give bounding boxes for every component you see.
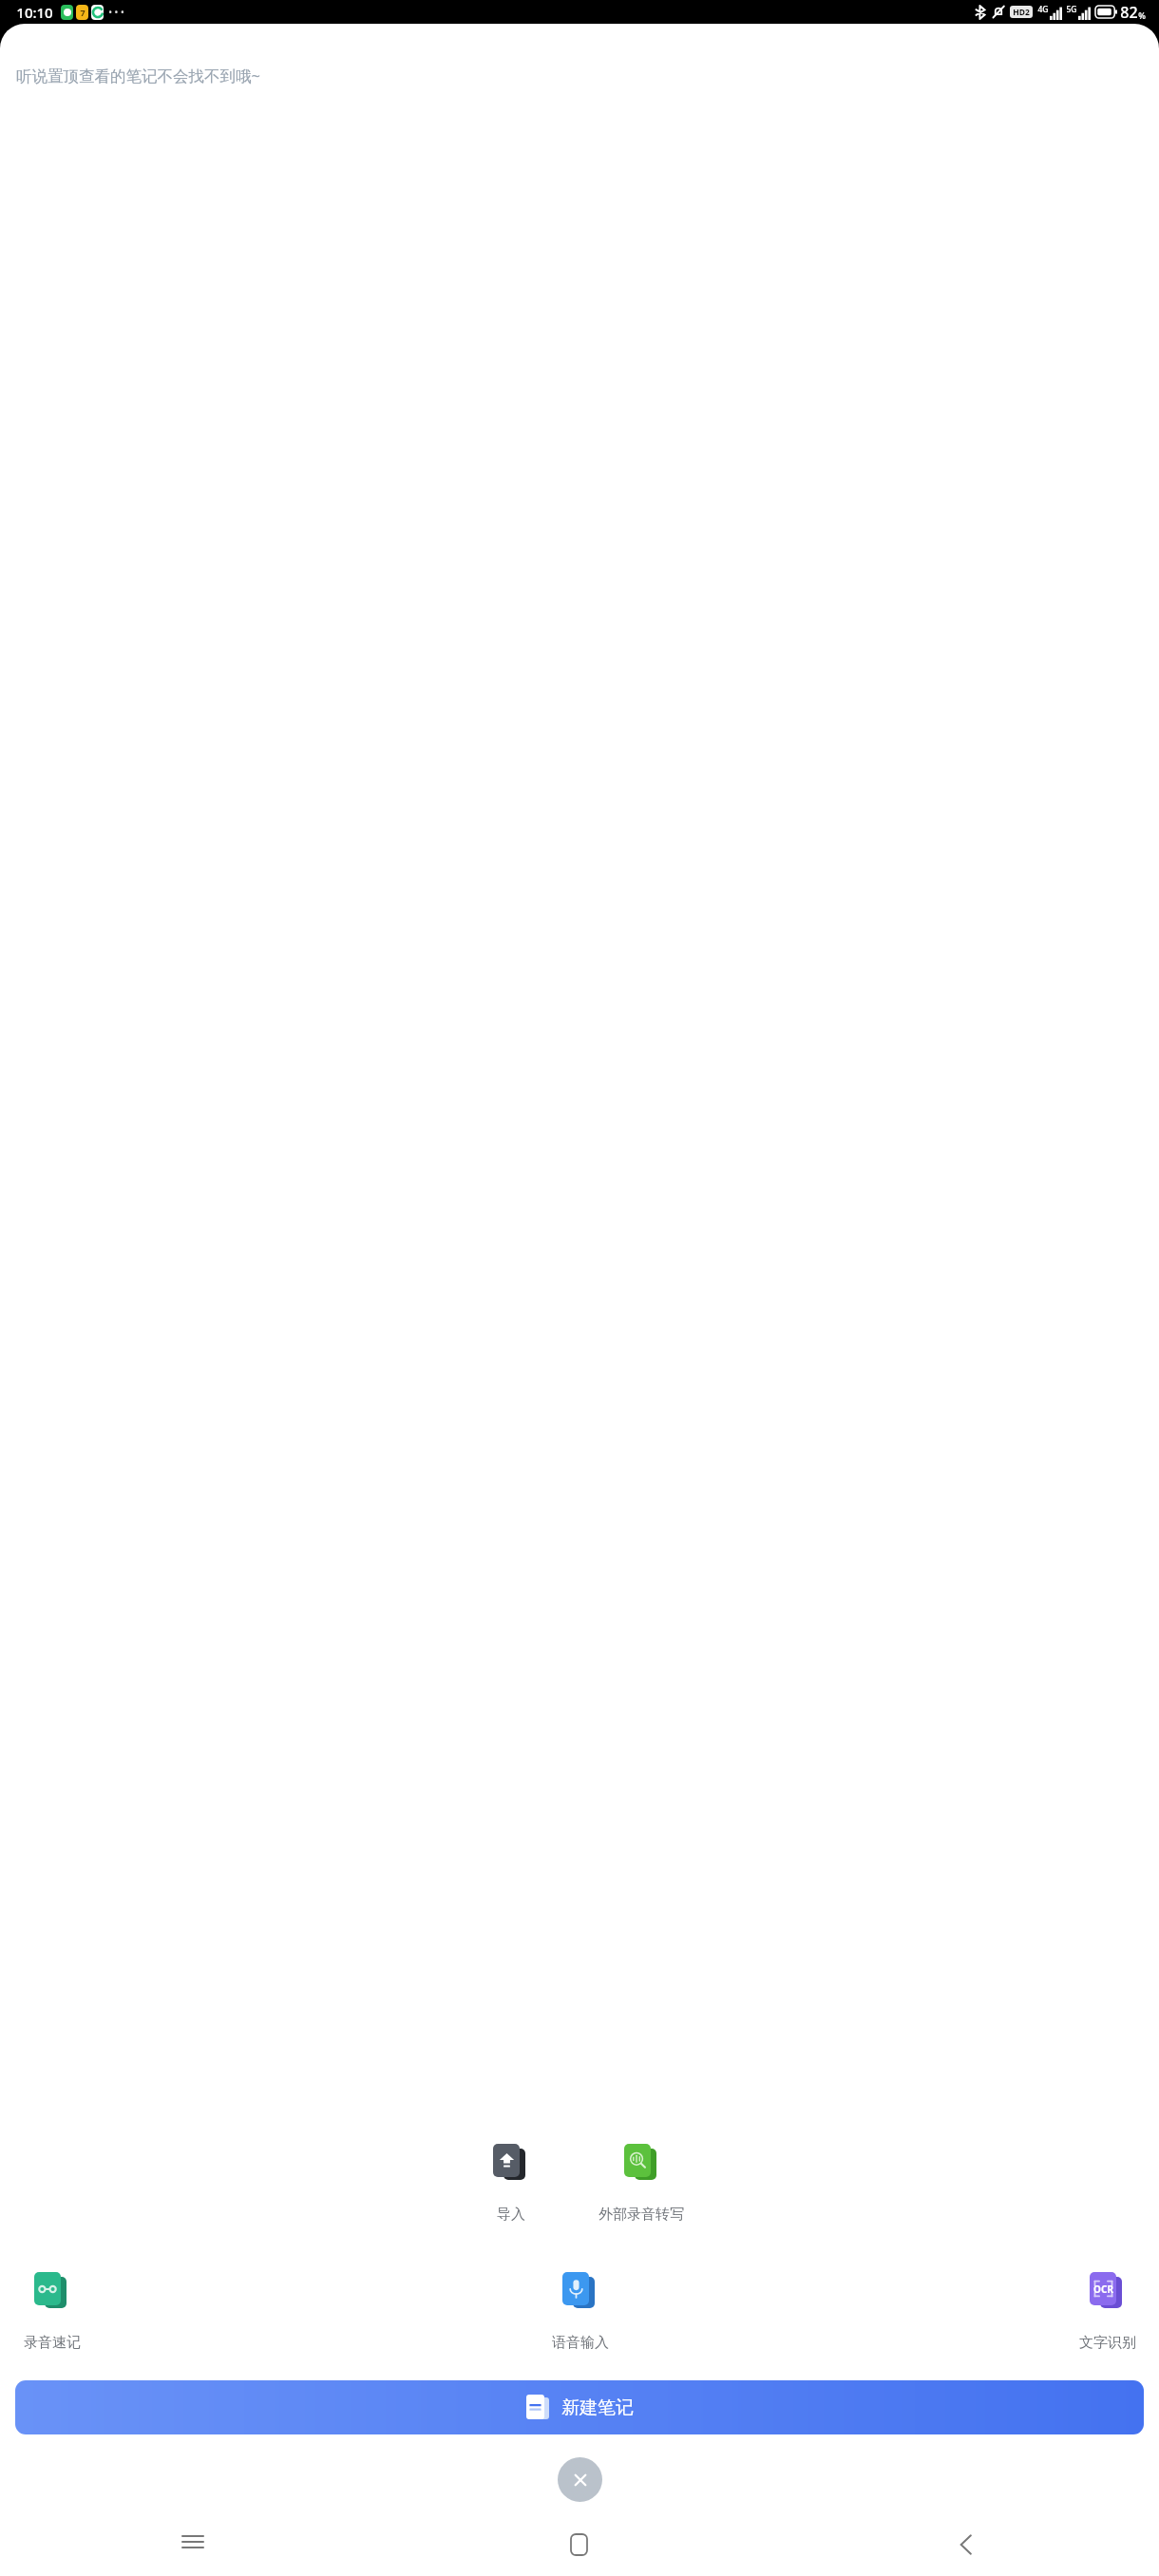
button[interactable]: Back xyxy=(772,2525,1159,2576)
staticText: % xyxy=(1138,9,1146,21)
staticText: 10:10 xyxy=(16,3,53,22)
staticText: OCR xyxy=(1093,2282,1113,2296)
button[interactable]: 语音输入 xyxy=(545,2256,615,2352)
button[interactable]: Recents xyxy=(0,2525,386,2576)
staticText: 新建笔记 xyxy=(561,2396,634,2419)
staticText: 语音输入 xyxy=(552,2334,609,2352)
staticText: 录音速记 xyxy=(24,2334,81,2352)
staticText: HD2 xyxy=(1013,7,1030,18)
button[interactable]: 导入 xyxy=(476,2128,545,2224)
staticText: 外部录音转写 xyxy=(598,2206,684,2224)
staticText: 4G xyxy=(1037,4,1049,15)
button[interactable]: 录音速记 xyxy=(17,2256,86,2352)
staticText: • • • xyxy=(108,6,124,19)
button[interactable]: OCR xyxy=(1073,2256,1142,2352)
staticText: 导入 xyxy=(497,2206,525,2224)
staticText: 5G xyxy=(1066,4,1077,15)
staticText: 82 xyxy=(1120,2,1138,23)
button[interactable]: 外部录音转写 xyxy=(598,2128,684,2224)
staticText: 文字识别 xyxy=(1079,2334,1136,2352)
staticText: 听说置顶查看的笔记不会找不到哦~ xyxy=(16,65,260,86)
button[interactable]: Close xyxy=(558,2457,602,2502)
button[interactable]: 新建笔记 xyxy=(15,2380,1144,2434)
staticText: 7 xyxy=(80,7,85,18)
button[interactable]: Home xyxy=(386,2525,772,2576)
